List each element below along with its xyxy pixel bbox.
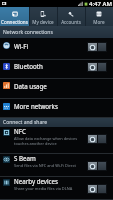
- staticText: My device: [32, 19, 54, 25]
- button[interactable]: Bluetooth: [0, 60, 113, 79]
- staticText: NFC: [14, 127, 26, 135]
- button[interactable]: More: [85, 7, 113, 26]
- button[interactable]: Toggle: [87, 134, 107, 144]
- staticText: Connect and share: [3, 119, 48, 126]
- staticText: Accounts: [61, 19, 81, 25]
- button[interactable]: Accounts: [57, 7, 85, 26]
- button[interactable]: Nearby devices: [0, 177, 113, 200]
- button[interactable]: Toggle: [87, 161, 107, 171]
- button[interactable]: More networks: [0, 99, 113, 118]
- staticText: Connections: [1, 19, 28, 25]
- staticText: More: [93, 19, 105, 25]
- button[interactable]: Data usage: [0, 79, 113, 99]
- staticText: S Beam: [14, 154, 36, 162]
- staticText: Network connections: [3, 29, 53, 36]
- staticText: Nearby devices: [14, 177, 58, 185]
- button[interactable]: My device: [29, 7, 57, 26]
- staticText: 4:47 AM: [89, 0, 112, 7]
- button[interactable]: Toggle: [87, 184, 107, 194]
- button[interactable]: Toggle: [87, 42, 107, 52]
- staticText: Bluetooth: [14, 62, 43, 70]
- button[interactable]: S Beam: [0, 154, 113, 177]
- staticText: Wi-Fi: [14, 42, 29, 50]
- staticText: Share your media files via DLNA: [14, 186, 73, 191]
- button[interactable]: Wi-Fi: [0, 38, 113, 60]
- button[interactable]: Toggle: [87, 62, 107, 72]
- staticText: Allow data exchange when devices touches…: [14, 136, 85, 146]
- staticText: More networks: [14, 102, 58, 110]
- staticText: Send files via NFC and Wi-Fi Direct: [14, 163, 76, 168]
- button[interactable]: NFC: [0, 127, 113, 154]
- staticText: Data usage: [14, 82, 47, 90]
- button[interactable]: Connections: [0, 7, 29, 26]
